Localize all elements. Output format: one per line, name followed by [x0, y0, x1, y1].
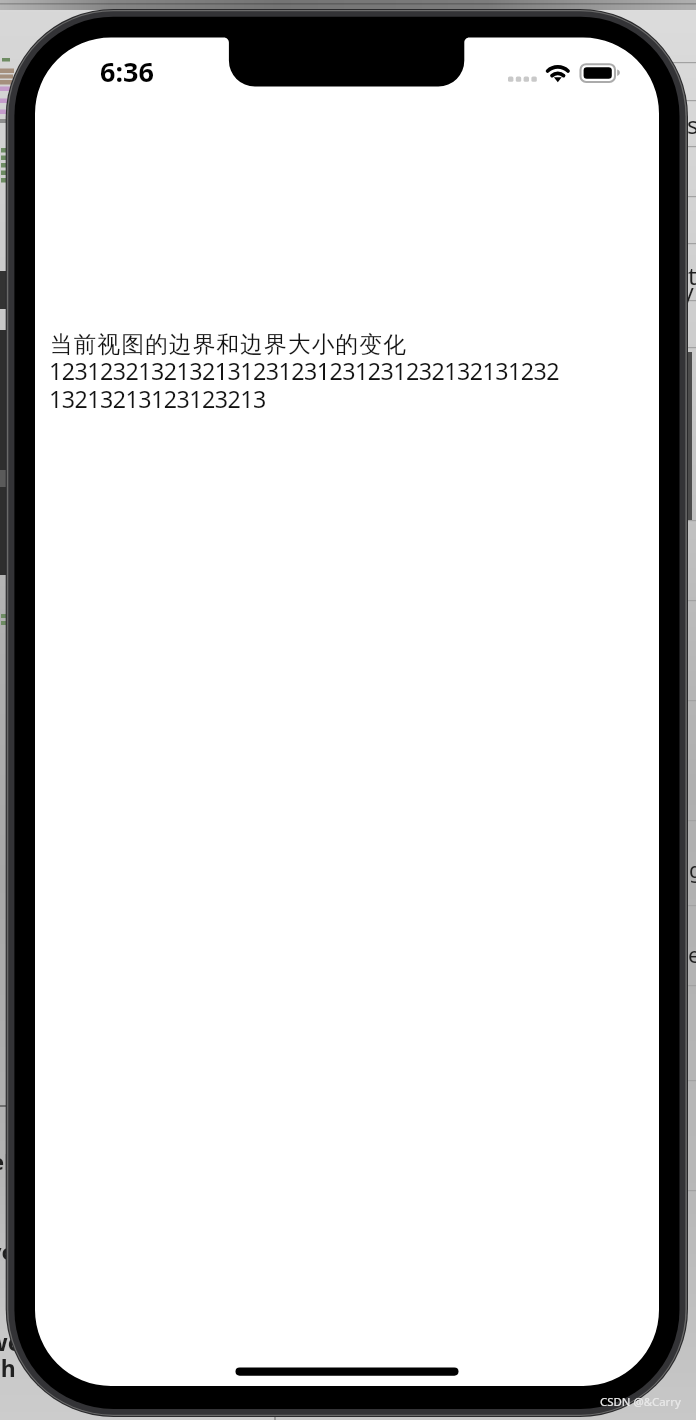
- staticText: vo: [0, 1236, 16, 1266]
- staticText: el: [0, 1146, 11, 1176]
- staticText: ch: [0, 1352, 16, 1383]
- staticText: 6:36: [100, 53, 154, 83]
- staticText: wo: [0, 1326, 23, 1357]
- staticText: e: [688, 939, 696, 969]
- staticText: t: [688, 259, 696, 292]
- staticText: 1231232132132131231231231231232132131232: [49, 355, 559, 387]
- staticText: s: [687, 108, 696, 141]
- button[interactable]: 6:36: [100, 53, 158, 83]
- staticText: 当前视图的边界和边界大小的变化: [50, 330, 407, 359]
- staticText: /: [685, 279, 694, 312]
- staticText: CSDN @&Carry: [600, 1394, 681, 1410]
- staticText: 13213213123123213: [49, 383, 266, 415]
- staticText: g: [689, 856, 696, 885]
